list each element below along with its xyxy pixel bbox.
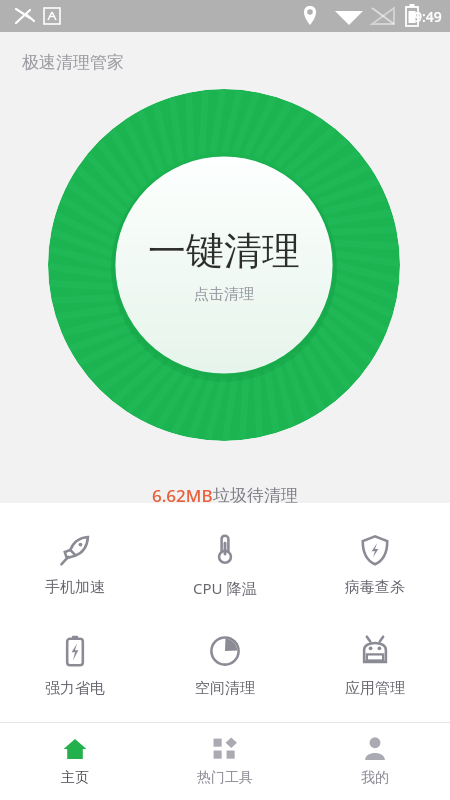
staticText: 应用管理 <box>345 679 405 698</box>
staticText: 一键清理 <box>148 227 300 275</box>
button[interactable]: 应用管理 <box>300 628 450 704</box>
staticText: 垃圾待清理 <box>213 485 298 506</box>
staticText: 手机加速 <box>45 578 105 597</box>
button[interactable]: 主页 <box>0 723 150 800</box>
staticText: 空间清理 <box>195 679 255 698</box>
staticText: 强力省电 <box>45 679 105 698</box>
staticText: 主页 <box>61 769 89 787</box>
staticText: 我的 <box>361 769 389 787</box>
button[interactable]: 手机加速 <box>0 527 150 603</box>
staticText: 点击清理 <box>194 285 254 304</box>
staticText: 9:49 <box>414 7 442 26</box>
button[interactable]: 我的 <box>300 723 450 800</box>
staticText: 极速清理管家 <box>22 52 124 73</box>
button[interactable]: 强力省电 <box>0 628 150 704</box>
button[interactable]: CPU 降温 <box>150 527 300 604</box>
button[interactable]: 热门工具 <box>150 723 300 800</box>
button[interactable]: 空间清理 <box>150 628 300 704</box>
staticText: 6.62MB <box>152 484 213 507</box>
staticText: CPU 降温 <box>193 578 257 598</box>
staticText: 热门工具 <box>197 769 253 787</box>
button[interactable]: 一键清理 <box>48 89 400 441</box>
staticText: 病毒查杀 <box>345 578 405 597</box>
button[interactable]: 病毒查杀 <box>300 527 450 603</box>
